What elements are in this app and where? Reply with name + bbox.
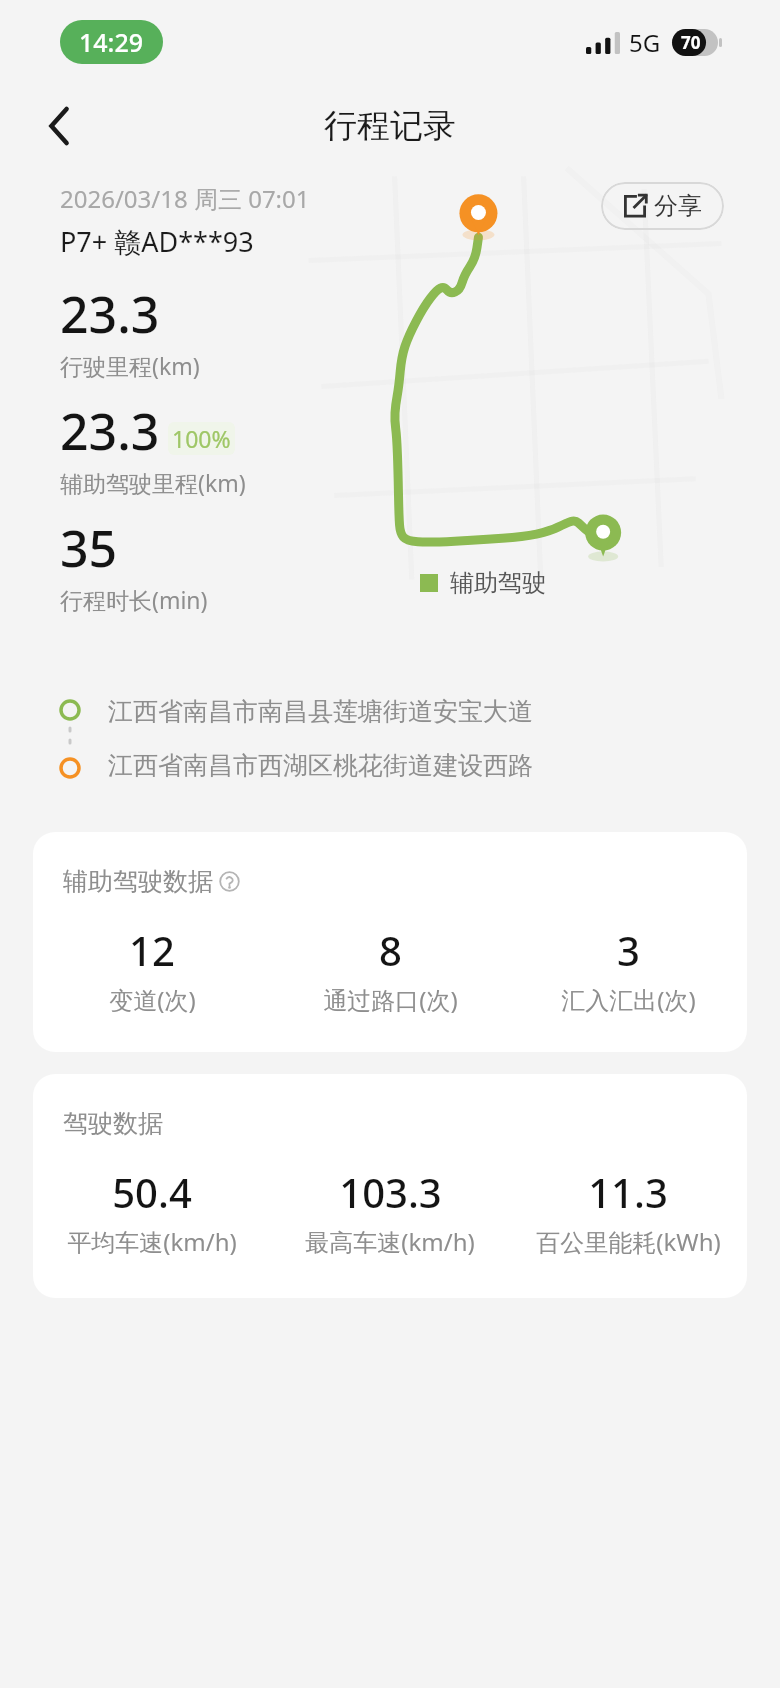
staticText: P7+ 赣AD***93 — [60, 223, 254, 260]
staticText: 江西省南昌市西湖区桃花街道建设西路 — [108, 750, 533, 781]
staticText: 平均车速(km/h) — [67, 1225, 237, 1258]
staticText: 百公里能耗(kWh) — [536, 1225, 721, 1258]
staticText: 分享 — [654, 191, 702, 221]
staticText: 行程记录 — [324, 105, 456, 147]
staticText: 汇入汇出(次) — [561, 983, 696, 1016]
staticText: 最高车速(km/h) — [305, 1225, 475, 1258]
button[interactable]: 分享 — [601, 182, 724, 230]
staticText: 100% — [172, 423, 231, 454]
staticText: 行程时长(min) — [60, 584, 208, 615]
staticText: 通过路口(次) — [323, 983, 458, 1016]
staticText: 23.3 — [60, 397, 160, 465]
button[interactable]: 驾驶数据 — [33, 1074, 747, 1298]
staticText: 辅助驾驶里程(km) — [60, 467, 246, 498]
staticText: 8 — [379, 923, 402, 977]
staticText: 行驶里程(km) — [60, 350, 200, 381]
staticText: 12 — [129, 923, 175, 977]
staticText: 辅助驾驶 — [450, 568, 546, 598]
staticText: 3 — [617, 923, 640, 977]
staticText: 辅助驾驶数据 — [63, 866, 213, 897]
staticText: 103.3 — [339, 1165, 442, 1219]
staticText: 70 — [681, 31, 701, 54]
staticText: 5G — [629, 26, 661, 59]
staticText: 江西省南昌市南昌县莲塘街道安宝大道 — [108, 696, 533, 727]
staticText: 驾驶数据 — [63, 1108, 163, 1139]
staticText: 14:29 — [79, 25, 144, 59]
staticText: 11.3 — [588, 1165, 668, 1219]
button[interactable]: 辅助驾驶数据 — [33, 832, 747, 1052]
button[interactable]: Back — [30, 97, 88, 155]
staticText: 50.4 — [112, 1165, 192, 1219]
staticText: 变道(次) — [109, 983, 196, 1016]
staticText: 23.3 — [60, 280, 160, 348]
staticText: 35 — [60, 514, 118, 582]
staticText: 2026/03/18 周三 07:01 — [60, 182, 310, 215]
